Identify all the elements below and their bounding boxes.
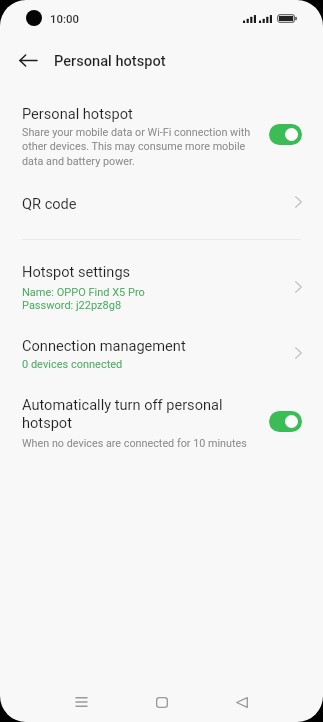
button[interactable]: Connection management [0,328,323,378]
staticText: Connection management [22,337,186,354]
staticText: Share your mobile data or Wi-Fi connecti… [22,126,260,168]
staticText: QR code [22,195,77,212]
staticText: Automatically turn off personal hotspot [22,396,257,431]
staticText: Personal hotspot [22,105,133,122]
staticText: 10:00 [50,12,79,25]
button[interactable]: Personal hotspot [0,94,323,174]
button[interactable]: Toggle [269,411,302,432]
button[interactable]: Automatically turn off personal hotspot [0,388,323,454]
button[interactable]: Back [220,680,264,722]
staticText: Hotspot settings [22,263,131,280]
button[interactable]: QR code [0,180,323,225]
staticText: Password: j22pz8g8 [22,299,122,312]
staticText: When no devices are connected for 10 min… [22,437,247,450]
staticText: 0 devices connected [22,358,123,371]
button[interactable]: Back [10,42,46,78]
button[interactable]: Recent apps [59,680,103,722]
staticText: Name: OPPO Find X5 Pro [22,286,145,299]
button[interactable]: Hotspot settings [0,254,323,318]
button[interactable]: Home [140,680,184,722]
staticText: Personal hotspot [54,52,166,69]
button[interactable]: Toggle [269,124,302,145]
